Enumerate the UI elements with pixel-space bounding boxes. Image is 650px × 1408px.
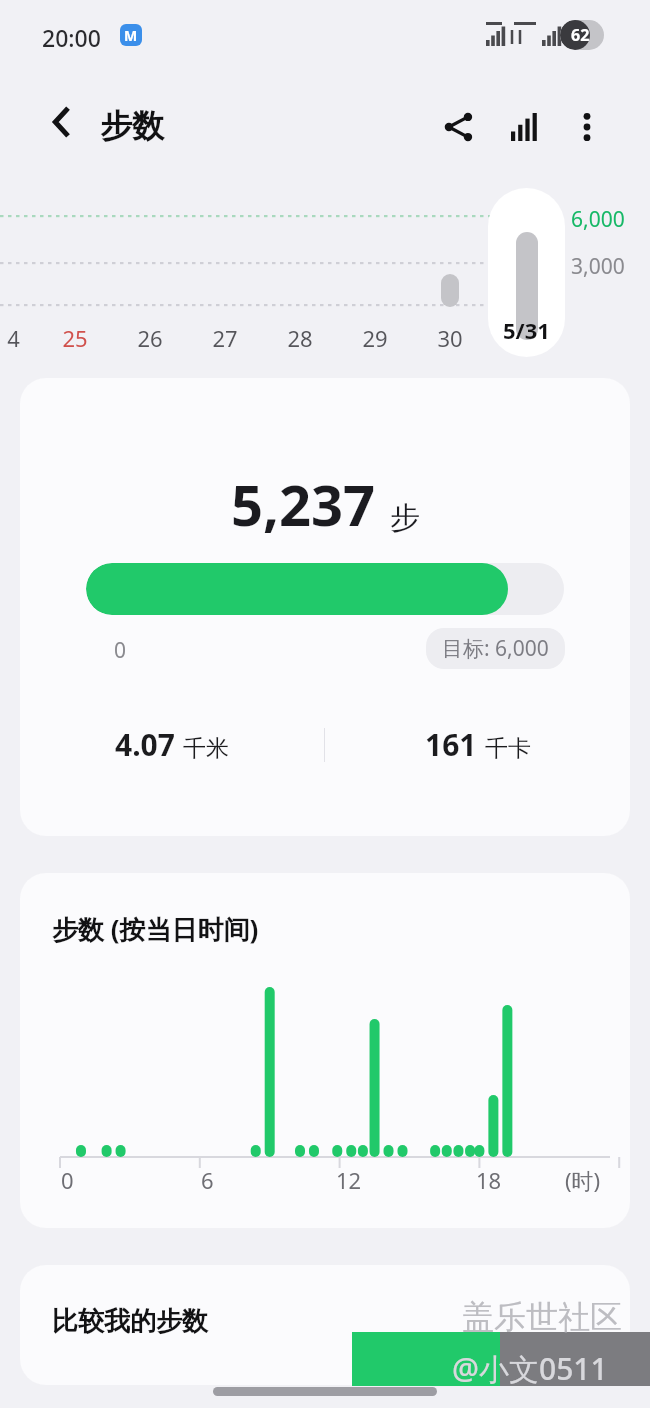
staticText: 盖乐世社区 — [462, 1297, 622, 1337]
staticText: 步数 (按当日时间) — [52, 911, 259, 947]
staticText: 步数 — [100, 106, 164, 146]
button[interactable]: 25 — [62, 320, 88, 356]
button[interactable]: 5,237 — [20, 378, 630, 836]
staticText: 6 — [201, 1165, 214, 1195]
button[interactable]: 4.07 — [20, 724, 324, 765]
button[interactable]: 27 — [212, 320, 238, 356]
button[interactable]: 5/31 — [488, 188, 565, 357]
staticText: 161 — [425, 724, 477, 765]
staticText: 18 — [476, 1165, 502, 1195]
button[interactable]: 30 — [437, 320, 463, 356]
staticText: 步 — [390, 499, 420, 537]
staticText: 62 — [571, 24, 590, 46]
button[interactable]: Share — [428, 96, 490, 158]
staticText: 29 — [362, 323, 388, 353]
button[interactable]: More options — [556, 96, 618, 158]
staticText: 20:00 — [42, 22, 101, 53]
staticText: 6,000 — [571, 205, 625, 234]
button[interactable]: 161 — [325, 724, 630, 765]
staticText: 千米 — [183, 734, 229, 763]
staticText: 4.07 — [115, 724, 175, 765]
staticText: 30 — [437, 323, 463, 353]
button[interactable]: Back — [32, 92, 92, 152]
staticText: 目标: 6,000 — [442, 634, 549, 663]
staticText: 25 — [62, 323, 88, 353]
staticText: 5/31 — [503, 315, 550, 345]
button[interactable]: 4 — [0, 320, 26, 356]
staticText: 28 — [287, 323, 313, 353]
staticText: 比较我的步数 — [52, 1305, 208, 1338]
staticText: 12 — [336, 1165, 362, 1195]
staticText: 0 — [61, 1165, 74, 1195]
button[interactable]: Chart — [494, 96, 556, 158]
staticText: 3,000 — [571, 252, 625, 281]
staticText: (时) — [565, 1165, 601, 1195]
button[interactable]: 28 — [287, 320, 313, 356]
staticText: @小文0511 — [452, 1348, 608, 1389]
staticText: 4 — [7, 323, 20, 353]
button[interactable]: 比较我的步数 — [20, 1265, 630, 1385]
staticText: 0 — [114, 636, 127, 665]
staticText: 5,237 — [231, 466, 376, 542]
staticText: 千卡 — [485, 734, 531, 763]
button[interactable]: 步数 (按当日时间) — [20, 873, 630, 1228]
button[interactable]: 26 — [137, 320, 163, 356]
button[interactable]: 29 — [362, 320, 388, 356]
staticText: 27 — [212, 323, 238, 353]
staticText: 26 — [137, 323, 163, 353]
staticText: M — [124, 26, 138, 45]
